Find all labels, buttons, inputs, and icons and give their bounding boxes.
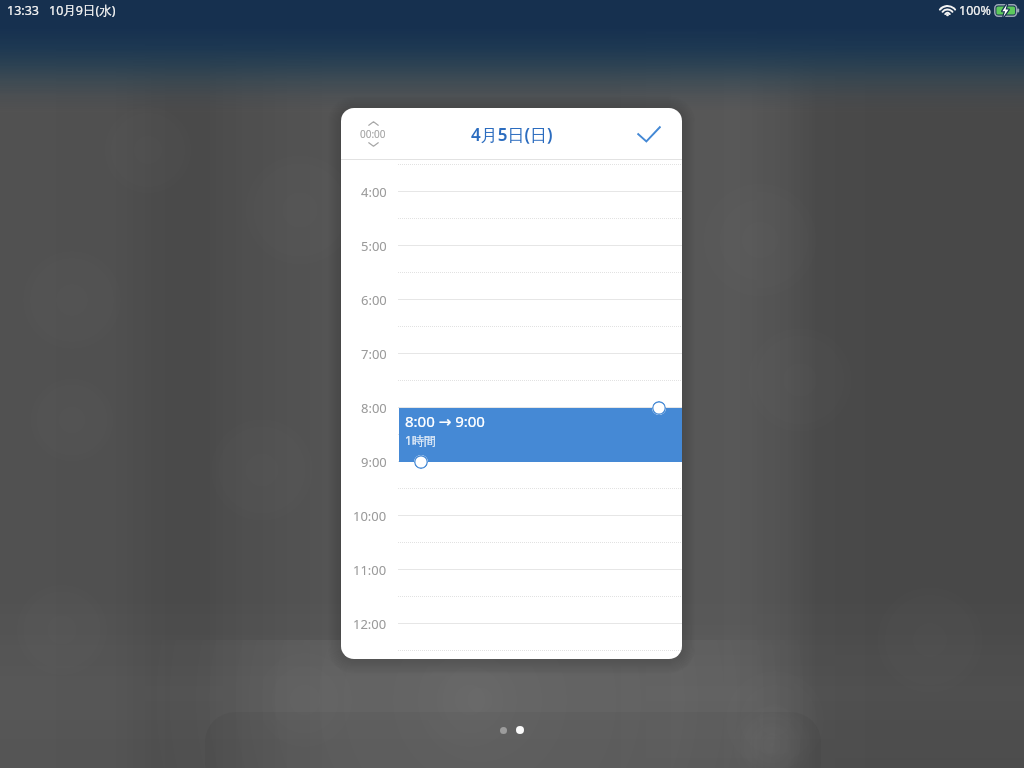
staticText: 00:00: [360, 127, 386, 141]
button[interactable]: Resize handle: [652, 401, 666, 415]
button[interactable]: Time step 00:00: [350, 121, 396, 147]
staticText: 8:00: [361, 399, 387, 417]
staticText: 1時間: [405, 432, 436, 448]
button[interactable]: Resize handle: [414, 455, 428, 469]
staticText: 5:00: [361, 237, 387, 255]
staticText: 11:00: [353, 561, 387, 579]
staticText: 7:00: [361, 345, 387, 363]
staticText: 10:00: [353, 507, 387, 525]
staticText: 8:00 → 9:00: [405, 411, 485, 431]
button[interactable]: Done: [629, 114, 669, 154]
staticText: 13:33: [7, 2, 39, 19]
staticText: 6:00: [361, 291, 387, 309]
staticText: 12:00: [353, 615, 387, 633]
button[interactable]: 8:00 → 9:00: [399, 408, 682, 462]
staticText: 100%: [959, 2, 991, 19]
staticText: 4月5日(日): [471, 123, 553, 146]
staticText: 10月9日(水): [49, 2, 116, 19]
staticText: 9:00: [361, 453, 387, 471]
staticText: 4:00: [361, 183, 387, 201]
